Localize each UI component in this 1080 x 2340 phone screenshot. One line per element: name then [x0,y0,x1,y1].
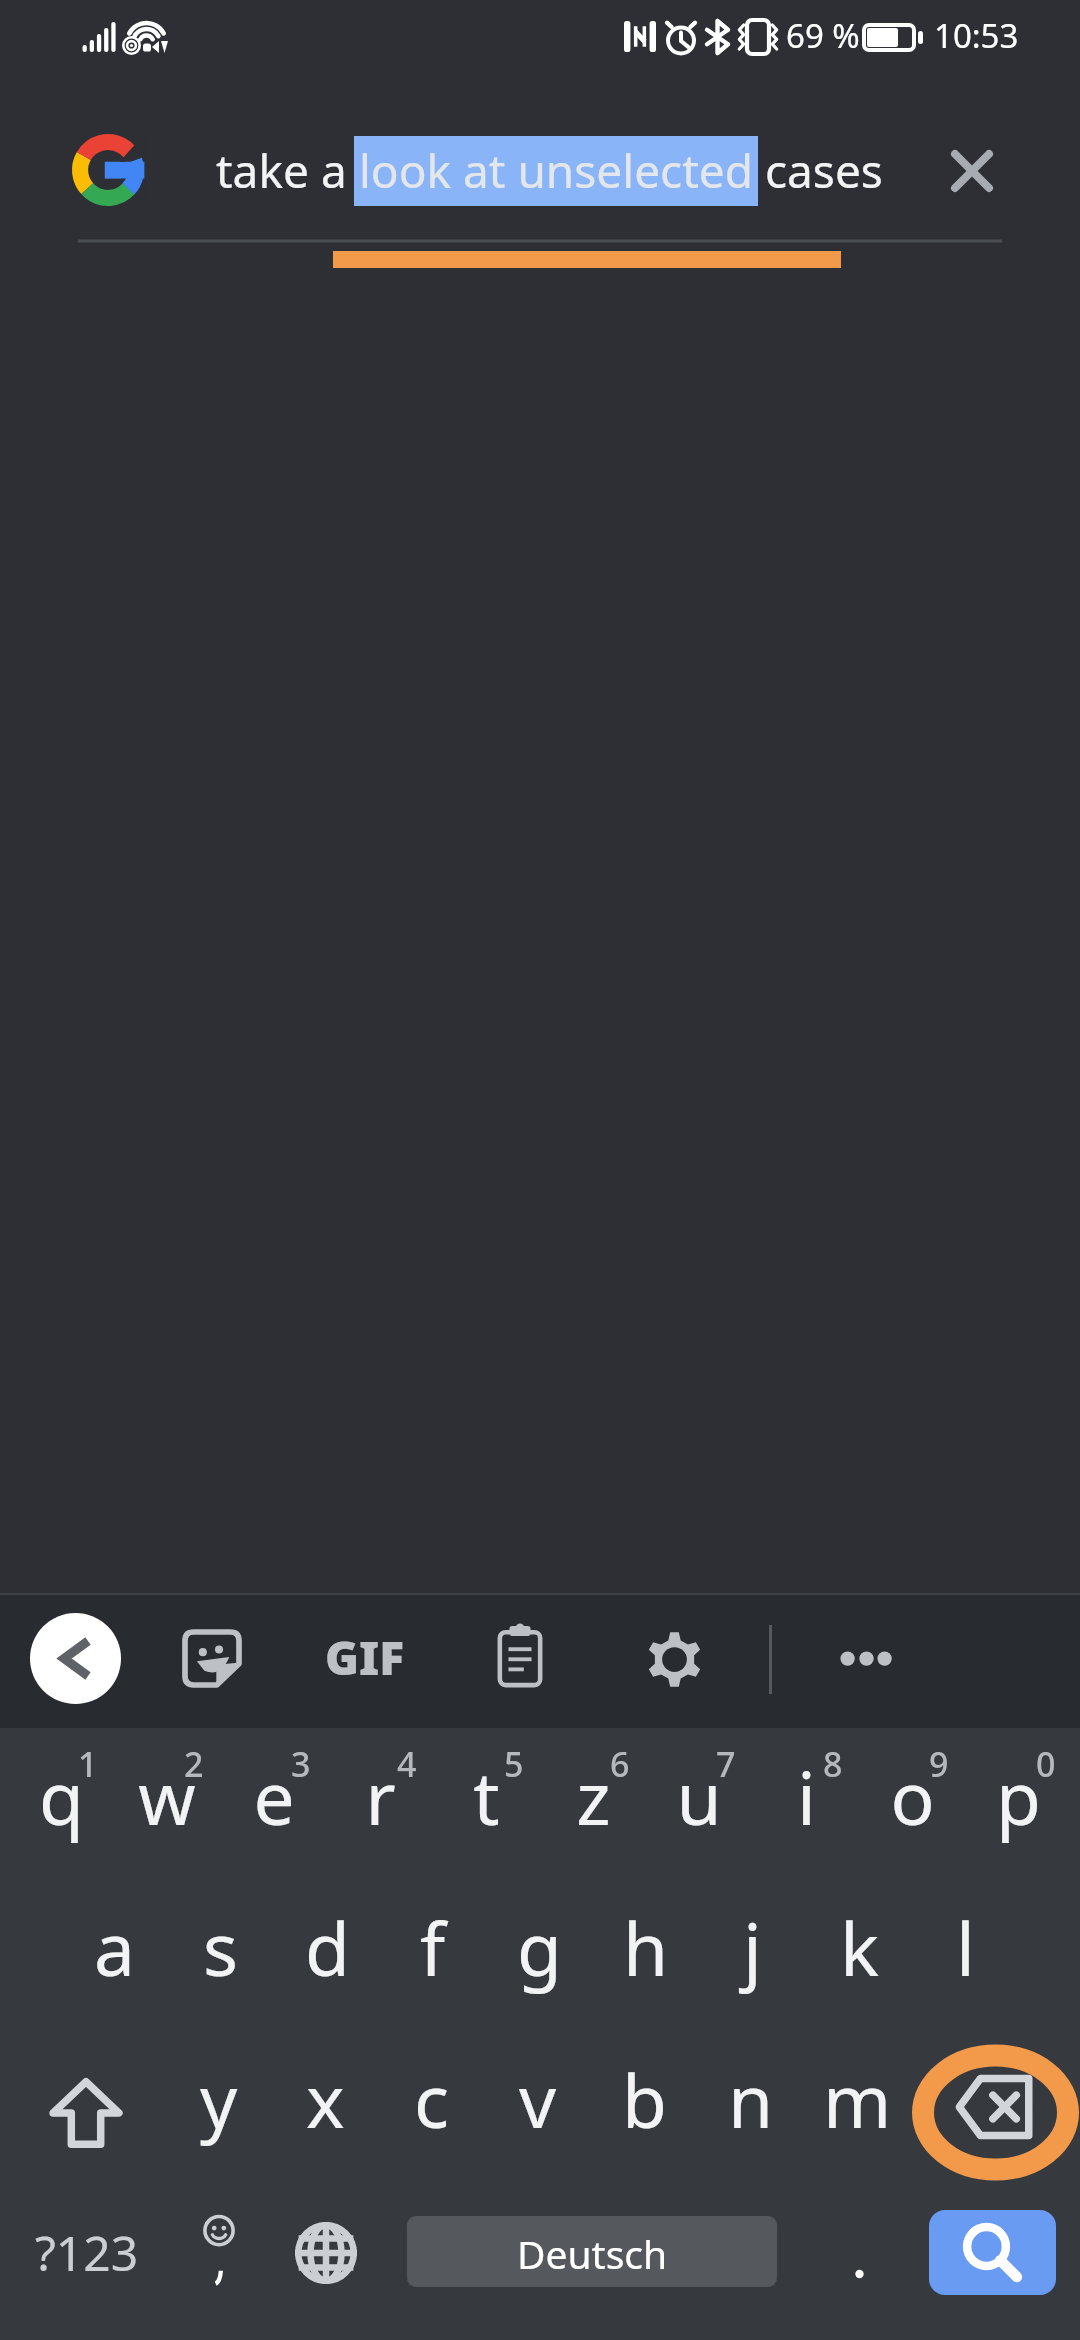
staticText: f [420,1898,446,1997]
staticText: o [890,1747,935,1846]
staticText: 5 [504,1741,524,1787]
button[interactable]: v [485,2034,591,2187]
staticText: b [622,2050,667,2149]
button[interactable]: Backspace [920,2034,1072,2187]
staticText: s [203,1898,238,1997]
staticText: take a [216,139,359,202]
button[interactable]: d [274,1881,380,2034]
staticText: v [519,2050,557,2149]
button[interactable]: Shift [8,2034,158,2187]
button[interactable]: Change language [274,2187,384,2340]
staticText: j [743,1898,762,1997]
staticText: 0 [1036,1741,1056,1787]
staticText: Deutsch [517,2227,668,2280]
staticText: 69 % [786,13,860,58]
staticText: 6 [610,1741,630,1787]
staticText: 1 [78,1741,98,1787]
staticText: k [840,1898,879,1997]
button[interactable]: j [699,1881,805,2034]
button[interactable]: e [221,1728,327,1881]
button[interactable]: n [698,2034,804,2187]
button[interactable]: Back [30,1613,121,1704]
button[interactable]: z [540,1728,646,1881]
button[interactable]: f [380,1881,486,2034]
button[interactable]: Emoji and comma [164,2187,274,2340]
button[interactable]: Search [929,2210,1056,2295]
staticText: 4 [397,1741,417,1787]
staticText: 7 [716,1741,736,1787]
staticText: 8 [823,1741,843,1787]
button[interactable]: Settings [634,1618,714,1698]
button[interactable]: More options [820,1616,912,1708]
staticText: i [797,1747,816,1846]
button[interactable] [800,2187,918,2340]
button[interactable]: m [804,2034,910,2187]
staticText: x [306,2050,345,2149]
staticText: h [623,1898,669,1997]
button[interactable]: Google [72,134,144,206]
staticText: c [414,2050,450,2149]
staticText: w [138,1747,196,1846]
button[interactable]: i [753,1728,859,1881]
button[interactable]: a [61,1881,167,2034]
button[interactable]: o [859,1728,965,1881]
staticText: z [576,1747,611,1846]
staticText: t [473,1747,500,1846]
staticText: look at unselected [359,139,753,202]
button[interactable]: k [806,1881,912,2034]
button[interactable]: Clear query [929,128,1013,212]
staticText: g [517,1898,562,1997]
staticText: u [676,1747,722,1846]
button[interactable]: s [167,1881,273,2034]
button[interactable]: GIF [324,1620,404,1700]
button[interactable]: b [591,2034,697,2187]
staticText: ?123 [35,2220,139,2285]
button[interactable]: h [593,1881,699,2034]
button[interactable]: l [912,1881,1018,2034]
staticText: p [996,1747,1041,1846]
button[interactable]: Deutsch [407,2216,777,2287]
button[interactable]: r [327,1728,433,1881]
staticText: 3 [291,1741,311,1787]
staticText: n [728,2050,774,2149]
staticText: q [39,1747,84,1846]
button[interactable]: q [8,1728,114,1881]
staticText: d [305,1898,350,1997]
staticText: 9 [929,1741,949,1787]
staticText: 10:53 [934,13,1019,58]
staticText: e [253,1747,295,1846]
button[interactable]: c [379,2034,485,2187]
staticText: y [200,2050,238,2149]
staticText: m [823,2050,892,2149]
staticText: a [94,1898,135,1997]
button[interactable]: t [433,1728,539,1881]
staticText: r [365,1747,396,1846]
staticText: 2 [184,1741,204,1787]
button[interactable]: w [114,1728,220,1881]
button[interactable]: x [272,2034,378,2187]
staticText: GIF [325,1626,405,1689]
button[interactable]: Stickers [172,1620,252,1698]
button[interactable]: Clipboard [484,1614,556,1696]
button[interactable]: ?123 [4,2187,164,2340]
staticText: l [956,1898,975,1997]
button[interactable]: u [646,1728,752,1881]
button[interactable]: p [965,1728,1071,1881]
button[interactable]: y [166,2034,272,2187]
staticText: cases [753,139,883,202]
button[interactable]: g [486,1881,592,2034]
